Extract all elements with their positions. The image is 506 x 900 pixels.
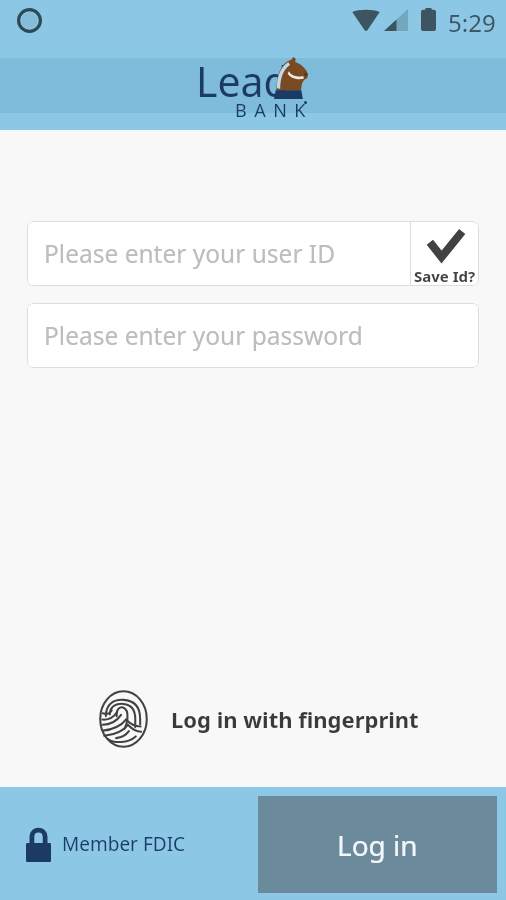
button[interactable]: Save Id [411, 221, 479, 286]
button[interactable]: Log in [258, 796, 497, 893]
button[interactable]: Please enter your password [27, 303, 479, 368]
staticText: Log in with fingerprint [171, 704, 419, 734]
staticText: Please enter your password [44, 319, 363, 352]
staticText: Please enter your user ID [44, 237, 336, 270]
staticText: Lead [196, 53, 289, 109]
staticText: 5:29 [448, 6, 496, 39]
staticText: B A N K [235, 98, 307, 123]
staticText: Save Id? [414, 266, 476, 286]
staticText: Member FDIC [62, 831, 186, 857]
button[interactable]: Log in with fingerprint [99, 690, 419, 748]
button[interactable]: Member FDIC [26, 826, 186, 862]
button[interactable]: Please enter your user ID [27, 221, 410, 286]
staticText: Log in [337, 826, 418, 864]
